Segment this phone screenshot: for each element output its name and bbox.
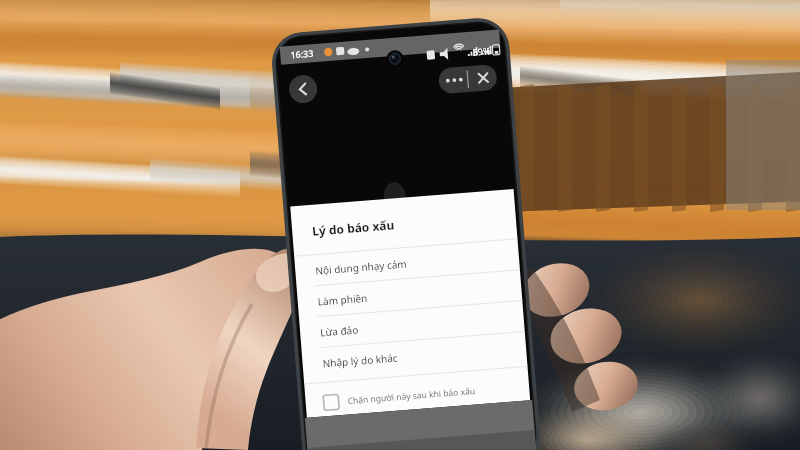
button[interactable]: Phone showing report reason dialog <box>0 0 800 450</box>
